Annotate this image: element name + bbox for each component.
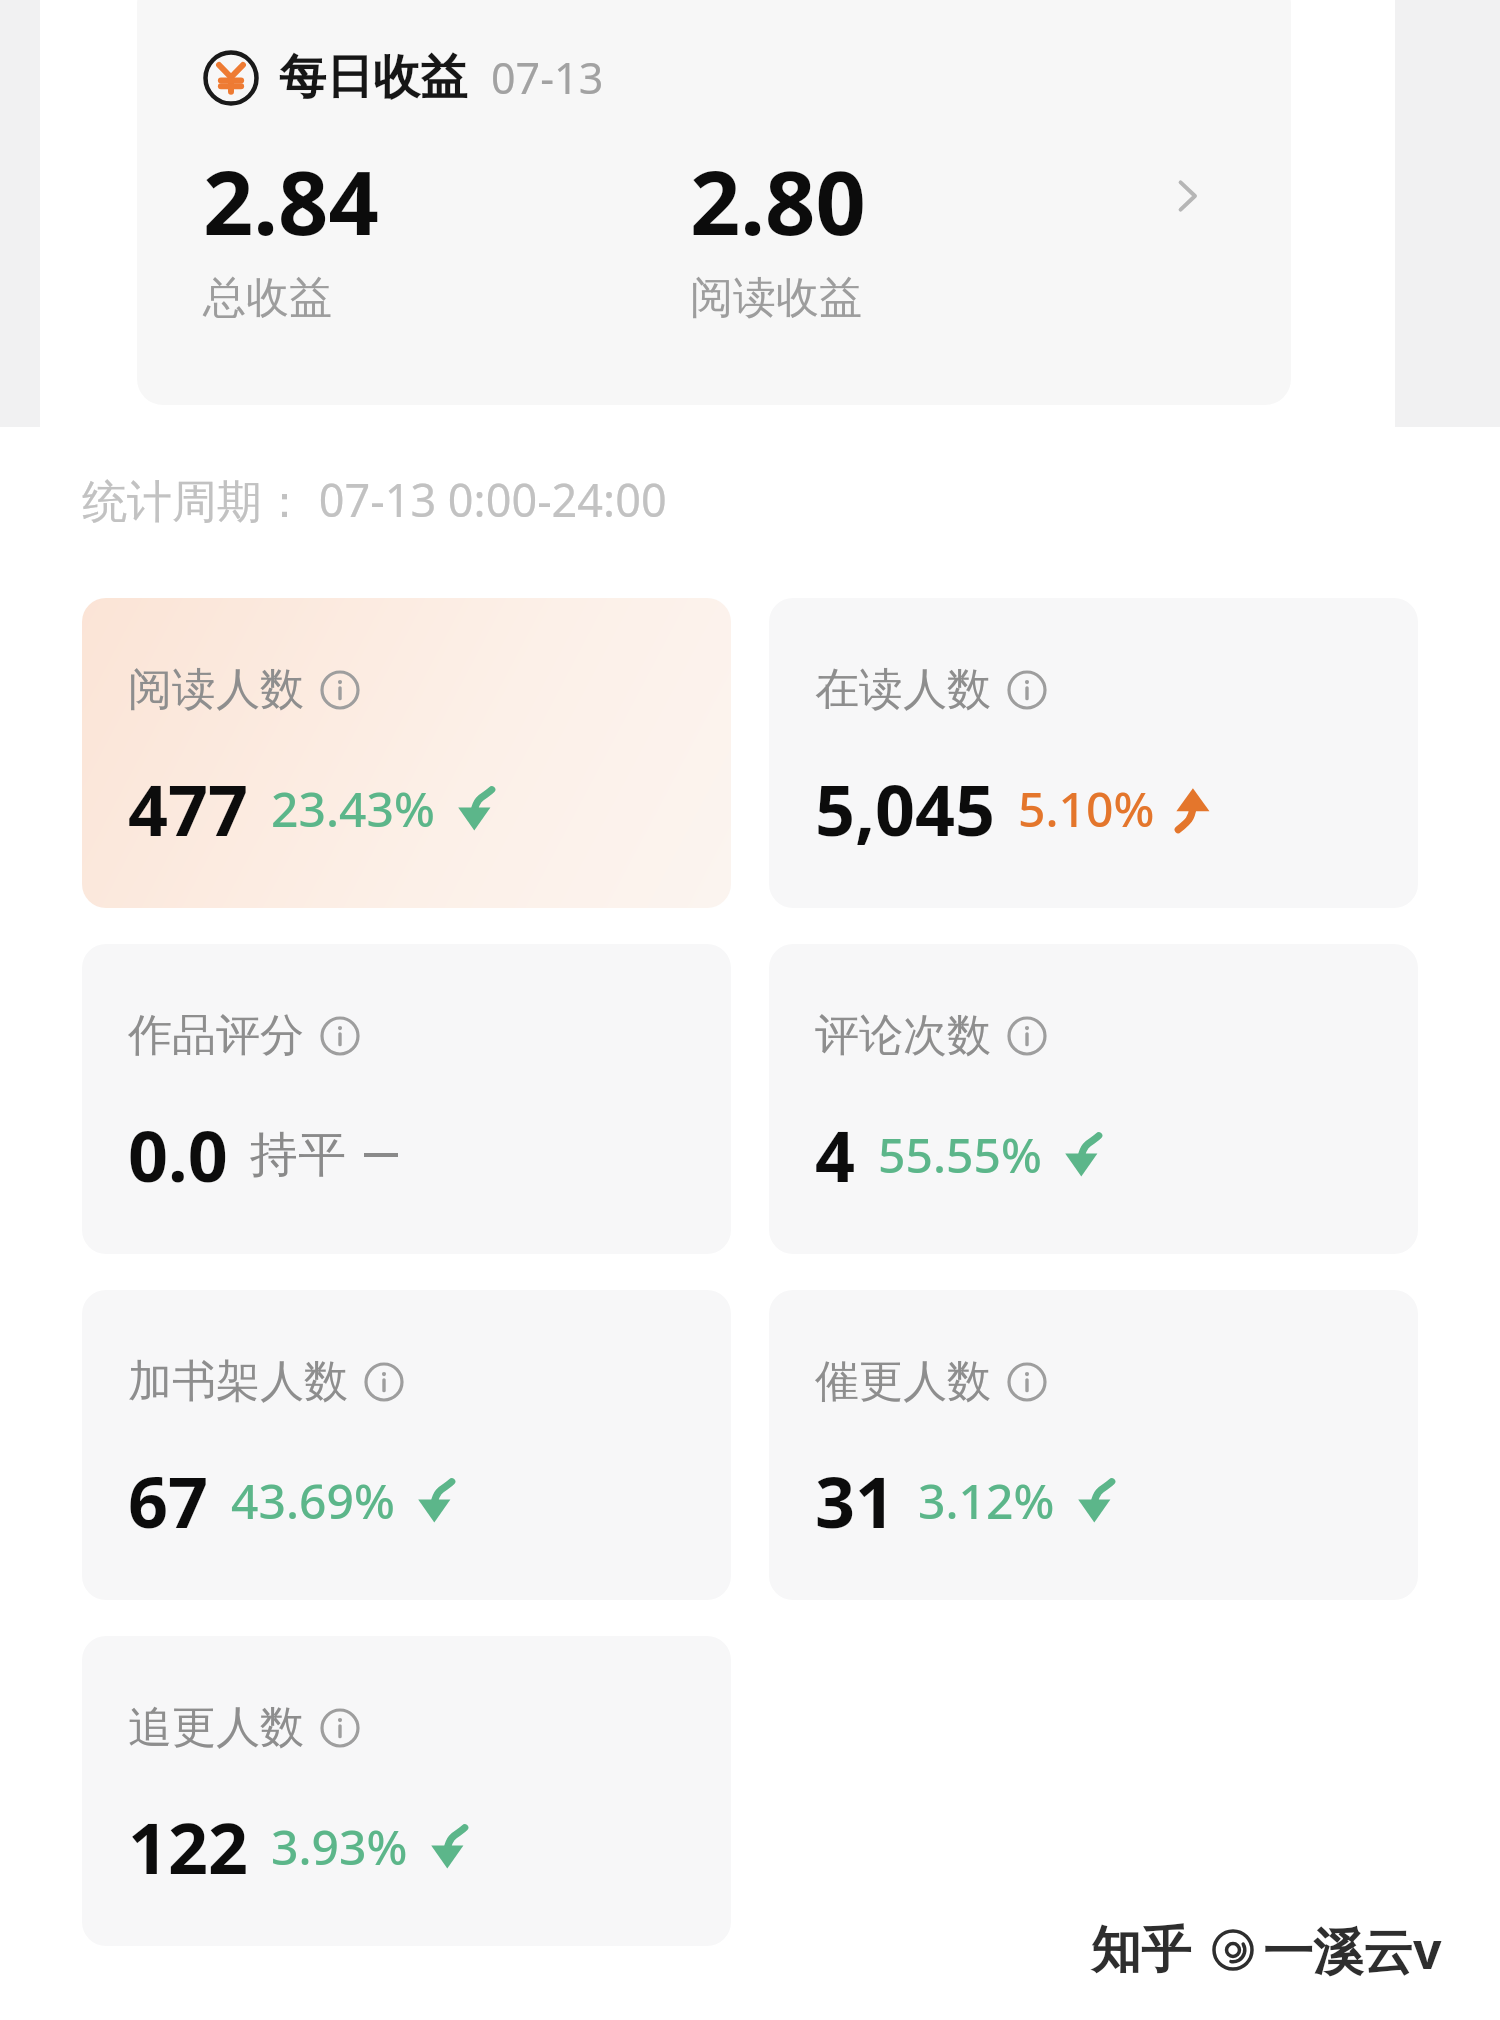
staticText: 4 [815,1107,856,1202]
staticText: 122 [128,1799,249,1894]
button[interactable]: 在读人数 [769,598,1418,908]
staticText: 5,045 [815,761,996,856]
staticText: 3.12% [918,1468,1055,1533]
button[interactable]: 追更人数 [82,1636,731,1946]
button[interactable]: 每日收益详情 [1151,160,1223,232]
staticText: 每日收益 [279,48,467,107]
button[interactable]: 作品评分 [82,944,731,1254]
staticText: 31 [815,1453,896,1548]
button[interactable]: 加书架人数 [82,1290,731,1600]
staticText: 55.55% [878,1122,1042,1187]
staticText: 阅读人数 [128,662,304,717]
button[interactable]: 每日收益 [137,0,1291,405]
staticText: 评论次数 [815,1008,991,1063]
staticText: 作品评分 [128,1008,304,1063]
staticText: 阅读收益 [690,271,862,325]
staticText: 知乎 [1091,1919,1191,1982]
button[interactable]: 催更人数 [769,1290,1418,1600]
staticText: 43.69% [231,1468,395,1533]
staticText: 追更人数 [128,1700,304,1755]
staticText: 持平 [250,1125,346,1185]
staticText: 催更人数 [815,1354,991,1409]
staticText: 0.0 [128,1107,228,1202]
staticText: 477 [128,761,249,856]
staticText: 一溪云v [1263,1916,1442,1984]
staticText: 总收益 [203,271,332,325]
staticText: 07-13 [491,48,604,107]
staticText: 加书架人数 [128,1354,348,1409]
staticText: 在读人数 [815,662,991,717]
staticText: 23.43% [271,776,435,841]
button[interactable]: 评论次数 [769,944,1418,1254]
staticText: 2.84 [203,141,379,261]
staticText: 统计周期： 07-13 0:00-24:00 [82,469,667,530]
button[interactable]: 阅读人数 [82,598,731,908]
staticText: 3.93% [271,1814,408,1879]
staticText: 5.10% [1018,776,1155,841]
staticText: 67 [128,1453,209,1548]
staticText: 2.80 [690,141,866,261]
